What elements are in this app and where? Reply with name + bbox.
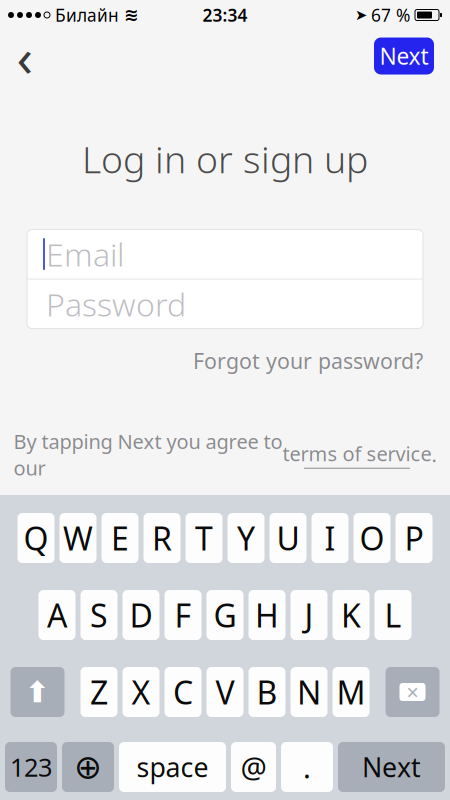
staticText: F xyxy=(174,594,191,636)
staticText: ‹ xyxy=(16,21,33,91)
button[interactable]: F xyxy=(164,590,201,640)
staticText: . xyxy=(431,441,436,468)
staticText: ⬆ xyxy=(25,675,50,709)
staticText: Password xyxy=(46,283,186,325)
staticText: V xyxy=(215,671,234,713)
button[interactable]: K xyxy=(332,590,369,640)
staticText: 23:34 xyxy=(202,3,247,26)
staticText: space xyxy=(136,749,208,785)
button[interactable]: O xyxy=(353,513,390,563)
staticText: Email xyxy=(46,233,124,275)
staticText: ⊕ xyxy=(74,748,102,786)
staticText: Next xyxy=(362,749,421,785)
staticText: R xyxy=(152,517,172,559)
button[interactable]: A xyxy=(38,590,75,640)
staticText: Билайн xyxy=(55,3,119,26)
staticText: B xyxy=(256,671,277,713)
staticText: P xyxy=(404,517,423,559)
button[interactable]: space xyxy=(119,742,226,792)
button[interactable]: P xyxy=(395,513,432,563)
staticText: @ xyxy=(240,747,266,786)
staticText: O xyxy=(359,517,384,559)
button[interactable]: U xyxy=(269,513,306,563)
button[interactable]: Z xyxy=(80,667,117,717)
button[interactable]: E xyxy=(101,513,138,563)
staticText: Log in or sign up xyxy=(82,134,368,184)
staticText: C xyxy=(173,671,193,713)
staticText: K xyxy=(341,594,361,636)
staticText: ≋ xyxy=(124,5,139,25)
staticText: 123 xyxy=(10,750,52,784)
staticText: W xyxy=(63,517,93,559)
staticText: X xyxy=(131,671,150,713)
button[interactable]: H xyxy=(248,590,285,640)
button[interactable]: . xyxy=(281,742,333,792)
button[interactable]: S xyxy=(80,590,117,640)
button[interactable]: Delete xyxy=(385,667,439,717)
button[interactable]: B xyxy=(248,667,285,717)
button[interactable]: D xyxy=(122,590,159,640)
button[interactable]: Back xyxy=(0,30,42,82)
button[interactable]: X xyxy=(122,667,159,717)
button[interactable]: terms of service xyxy=(282,440,431,469)
button[interactable]: G xyxy=(206,590,243,640)
staticText: Q xyxy=(23,517,48,559)
staticText: H xyxy=(255,594,279,636)
button[interactable]: @ xyxy=(231,742,276,792)
button[interactable]: J xyxy=(290,590,327,640)
staticText: G xyxy=(213,594,236,636)
staticText: N xyxy=(297,671,321,713)
staticText: Forgot your password? xyxy=(193,347,423,375)
button[interactable]: Forgot your password? xyxy=(193,341,423,381)
button[interactable]: M xyxy=(332,667,369,717)
staticText: 67 % xyxy=(371,3,410,26)
button[interactable]: R xyxy=(143,513,180,563)
button[interactable]: L xyxy=(374,590,411,640)
button[interactable]: T xyxy=(185,513,222,563)
button[interactable]: 123 xyxy=(5,742,57,792)
staticText: . xyxy=(303,747,311,786)
button[interactable]: W xyxy=(59,513,96,563)
staticText: A xyxy=(47,594,67,636)
staticText: ➤ xyxy=(355,7,367,23)
staticText: × xyxy=(406,678,418,706)
staticText: S xyxy=(90,594,108,636)
button[interactable]: V xyxy=(206,667,243,717)
staticText: L xyxy=(384,594,401,636)
button[interactable]: Q xyxy=(17,513,54,563)
staticText: terms of service xyxy=(282,440,431,467)
staticText: Z xyxy=(90,671,108,713)
button[interactable]: Y xyxy=(227,513,264,563)
staticText: M xyxy=(336,671,365,713)
staticText: J xyxy=(304,594,313,636)
button[interactable]: N xyxy=(290,667,327,717)
staticText: I xyxy=(324,517,335,559)
button[interactable]: Next xyxy=(338,742,445,792)
staticText: By tapping Next you agree to our xyxy=(13,428,282,481)
staticText: T xyxy=(195,517,213,559)
button[interactable]: Next keyboard xyxy=(62,742,114,792)
staticText: Y xyxy=(237,517,255,559)
button[interactable]: Shift xyxy=(10,667,64,717)
staticText: E xyxy=(111,517,129,559)
staticText: D xyxy=(129,594,152,636)
staticText: Next xyxy=(379,41,428,71)
button[interactable]: Next xyxy=(374,37,434,74)
button[interactable]: C xyxy=(164,667,201,717)
button[interactable]: I xyxy=(311,513,348,563)
staticText: U xyxy=(276,517,299,559)
